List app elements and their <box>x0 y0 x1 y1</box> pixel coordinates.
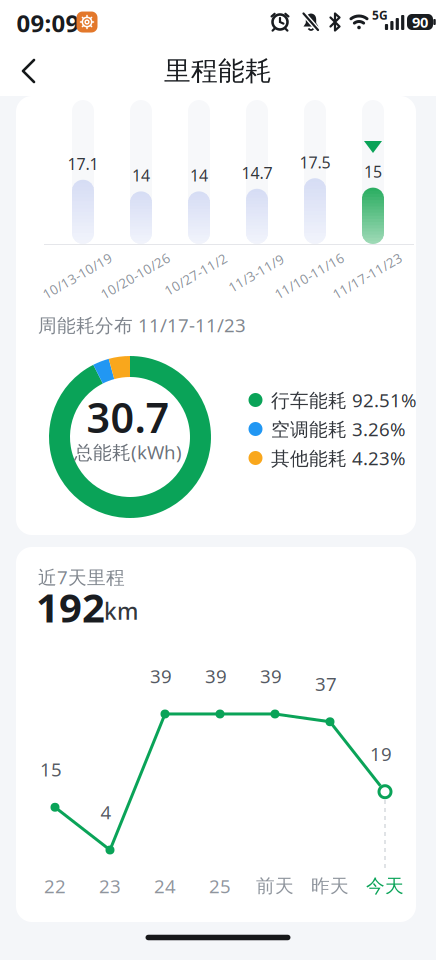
staticText: 11/17-11/23 <box>328 267 406 284</box>
staticText: 17.1 <box>67 153 98 174</box>
staticText: 39 <box>150 664 172 688</box>
staticText: 其他能耗 4.23% <box>271 446 406 470</box>
staticText: 11/10-11/16 <box>270 267 348 284</box>
staticText: 90 <box>412 12 428 32</box>
staticText: 里程能耗 <box>164 55 272 87</box>
staticText: 15 <box>364 161 382 182</box>
staticText: 25 <box>209 874 231 898</box>
staticText: 4 <box>100 800 111 824</box>
staticText: 09:09 <box>16 7 79 39</box>
staticText: 今天 <box>366 874 404 897</box>
staticText: 15 <box>40 757 62 782</box>
staticText: 19 <box>370 741 392 766</box>
staticText: 23 <box>99 874 121 898</box>
staticText: 10/27-11/2 <box>161 265 231 283</box>
staticText: 14.7 <box>241 162 272 183</box>
staticText: 14 <box>132 165 150 186</box>
staticText: 5G <box>372 7 388 23</box>
staticText: 前天 <box>256 874 294 897</box>
staticText: 总能耗(kWh) <box>74 440 182 464</box>
staticText: 17.5 <box>299 152 330 173</box>
staticText: 昨天 <box>311 874 349 897</box>
staticText: 22 <box>44 874 66 898</box>
staticText: 近7天里程 <box>38 565 125 589</box>
staticText: 14 <box>190 165 208 186</box>
staticText: 空调能耗 3.26% <box>271 417 406 441</box>
staticText: 10/13-10/19 <box>38 267 116 284</box>
staticText: 10/20-10/26 <box>96 267 174 284</box>
staticText: 周能耗分布 11/17-11/23 <box>38 313 246 337</box>
staticText: km <box>104 596 138 626</box>
staticText: 39 <box>205 664 227 688</box>
staticText: 192 <box>36 580 105 633</box>
staticText: 30.7 <box>86 390 169 444</box>
staticText: 11/3-11/9 <box>225 264 287 282</box>
staticText: 37 <box>315 671 337 696</box>
staticText: 39 <box>260 664 282 688</box>
staticText: 行车能耗 92.51% <box>271 388 417 412</box>
staticText: 24 <box>154 874 176 898</box>
